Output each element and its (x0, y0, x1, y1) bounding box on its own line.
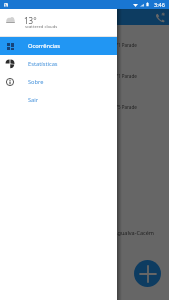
staticText: Estatísticas (28, 60, 58, 68)
button[interactable]: Sobre (0, 73, 117, 91)
staticText: 13° (24, 15, 37, 26)
staticText: Ocorrências (28, 42, 61, 50)
staticText: scattered clouds (25, 24, 58, 30)
staticText: 2271 Parade (110, 42, 137, 48)
staticText: Sobre (28, 78, 44, 86)
staticText: Agualva-Cacém (114, 229, 154, 236)
button[interactable]: Add call (153, 10, 167, 24)
button[interactable]: 2775 Parade (0, 91, 169, 122)
button[interactable]: Add occurrence (134, 260, 161, 287)
staticText: 3:46 (154, 1, 165, 8)
button[interactable]: Sair (0, 91, 117, 109)
staticText: 2771 Parade (110, 73, 137, 79)
button[interactable]: Estatísticas (0, 55, 117, 73)
button[interactable]: 2771 Parade (0, 60, 169, 91)
staticText: Sair (28, 96, 39, 104)
button[interactable]: Ocorrências (0, 37, 117, 55)
button[interactable]: 2271 Parade (0, 29, 169, 60)
staticText: 2775 Parade (110, 104, 137, 110)
